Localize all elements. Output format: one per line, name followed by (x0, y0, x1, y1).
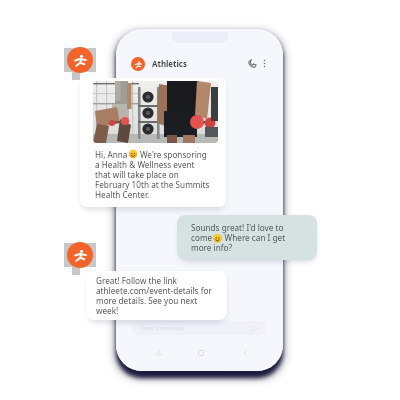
button[interactable]: Hi, Anna We're sponsoring a Health & Wel… (80, 78, 226, 207)
button[interactable]: Athletics profile (67, 47, 93, 73)
staticText: Athletics (152, 59, 187, 70)
staticText: Send a message (141, 324, 184, 332)
staticText: Hi, Anna We're sponsoring a Health & Wel… (95, 149, 211, 200)
button[interactable]: Send a message (132, 321, 266, 335)
staticText: Great! Follow the link athleete.com/even… (96, 275, 215, 316)
button[interactable]: Great! Follow the link athleete.com/even… (86, 271, 227, 320)
button[interactable]: Call (246, 57, 258, 69)
button[interactable]: Sounds great! I'd love to come Where can… (177, 215, 317, 260)
staticText: Sounds great! I'd love to come Where can… (191, 222, 291, 253)
button[interactable]: More options (258, 57, 270, 69)
button[interactable]: Athletics profile (67, 242, 93, 268)
button[interactable]: Athletics (131, 57, 187, 71)
